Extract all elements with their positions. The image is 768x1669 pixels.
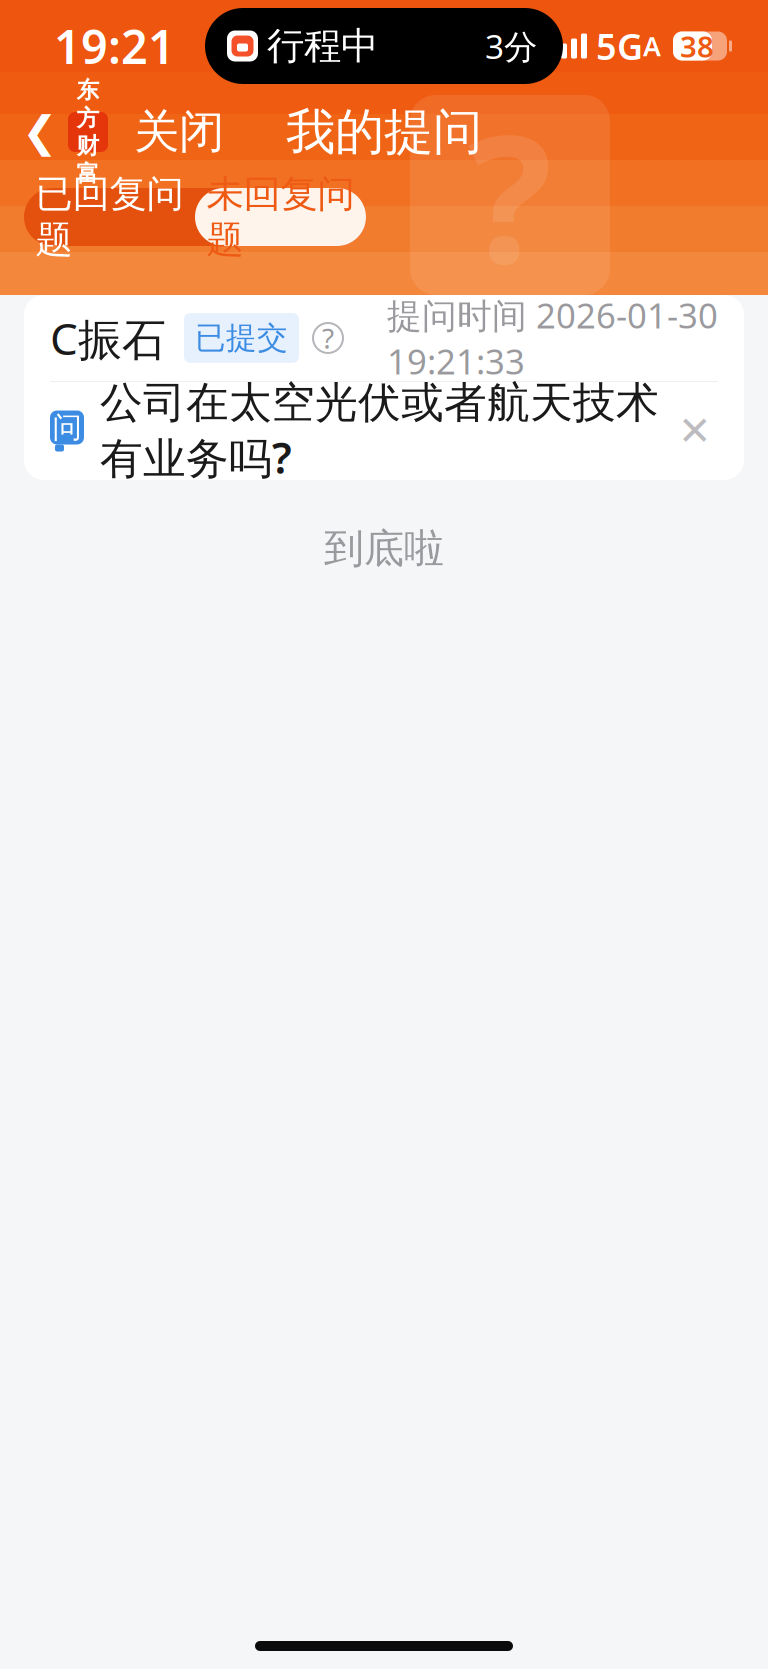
button[interactable]: 返回东方财富 xyxy=(0,96,108,168)
button[interactable]: 未回复问题 xyxy=(195,188,366,246)
staticText: ❮ xyxy=(22,108,58,156)
staticText: 提问时间 2026-01-30 19:21:33 xyxy=(387,292,718,384)
staticText: 我的提问 xyxy=(286,102,482,162)
button[interactable]: C振石 xyxy=(24,295,744,480)
button[interactable]: 关闭 xyxy=(108,92,224,172)
staticText: ✕ xyxy=(678,408,712,454)
staticText: 到底啦 xyxy=(324,524,444,573)
staticText: A xyxy=(643,28,661,64)
staticText: 3分 xyxy=(485,24,537,68)
staticText: 关闭 xyxy=(134,104,224,160)
staticText: 5G xyxy=(596,22,643,70)
staticText: 未回复问题 xyxy=(206,171,354,263)
staticText: 公司在太空光伏或者航天技术有业务吗? xyxy=(100,376,659,486)
staticText: ? xyxy=(322,319,334,357)
button[interactable]: 删除该提问 xyxy=(672,408,718,454)
staticText: 已提交 xyxy=(195,319,288,357)
staticText: 财富 xyxy=(76,132,99,188)
staticText: 东方 xyxy=(76,76,99,132)
button[interactable]: 已回复问题 xyxy=(24,188,195,246)
staticText: 已回复问题 xyxy=(35,171,183,263)
staticText: C振石 xyxy=(50,309,166,367)
staticText: ? xyxy=(468,78,552,312)
staticText: 19:21 xyxy=(54,15,175,77)
staticText: 行程中 xyxy=(267,23,378,69)
staticText: 问 xyxy=(52,409,81,445)
staticText: 38 xyxy=(680,26,714,65)
